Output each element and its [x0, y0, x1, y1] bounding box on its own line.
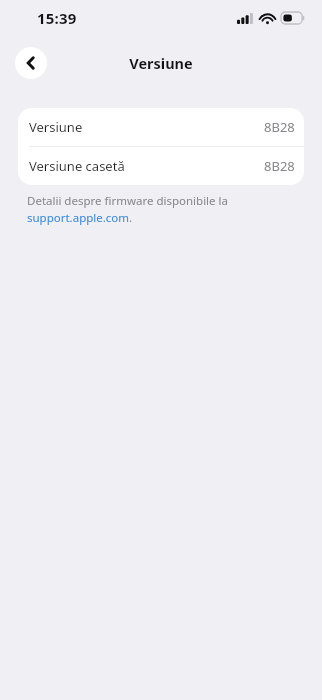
button[interactable]: Back: [15, 47, 47, 79]
staticText: 15:39: [37, 8, 77, 28]
staticText: Versiune casetă: [29, 157, 125, 175]
button[interactable]: Versiune: [18, 108, 304, 146]
staticText: Versiune: [29, 118, 83, 136]
staticText: support.apple.com.: [27, 210, 133, 226]
staticText: 8B28: [264, 157, 295, 175]
staticText: 8B28: [264, 118, 295, 136]
staticText: Detalii despre firmware disponibile la: [27, 193, 228, 209]
button[interactable]: support.apple.com.: [27, 210, 133, 226]
button[interactable]: Versiune casetă: [18, 147, 304, 185]
staticText: Versiune: [129, 53, 193, 73]
